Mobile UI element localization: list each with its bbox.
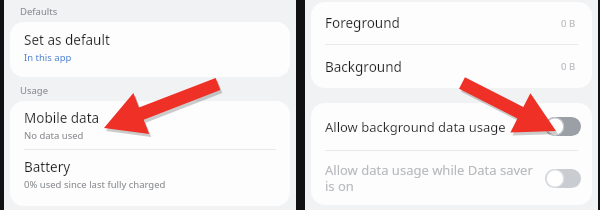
staticText: Usage — [20, 84, 49, 97]
button[interactable]: Mobile data — [10, 101, 290, 149]
staticText: 0% used since last fully charged — [24, 178, 166, 191]
button[interactable]: Toggle — [545, 117, 581, 136]
button[interactable]: Set as default — [10, 22, 290, 77]
staticText: 0 B — [561, 60, 576, 73]
staticText: Foreground — [325, 14, 400, 32]
staticText: Allow background data usage — [325, 118, 506, 136]
staticText: 0 B — [561, 17, 576, 30]
staticText: Allow data usage while Data saver is on — [325, 161, 539, 195]
button[interactable]: Allow background data usage — [311, 103, 592, 150]
button[interactable]: Background — [311, 45, 592, 88]
staticText: Background — [325, 58, 402, 76]
staticText: Defaults — [20, 5, 58, 18]
button[interactable]: Allow data usage while Data saver is on — [311, 151, 592, 205]
staticText: No data used — [24, 129, 84, 142]
staticText: Mobile data — [24, 109, 100, 127]
button[interactable]: Foreground — [311, 2, 592, 44]
button[interactable]: Toggle — [545, 169, 581, 188]
staticText: Set as default — [24, 31, 110, 49]
staticText: Battery — [24, 158, 71, 176]
staticText: In this app — [24, 51, 72, 64]
button[interactable]: Battery — [10, 150, 290, 198]
